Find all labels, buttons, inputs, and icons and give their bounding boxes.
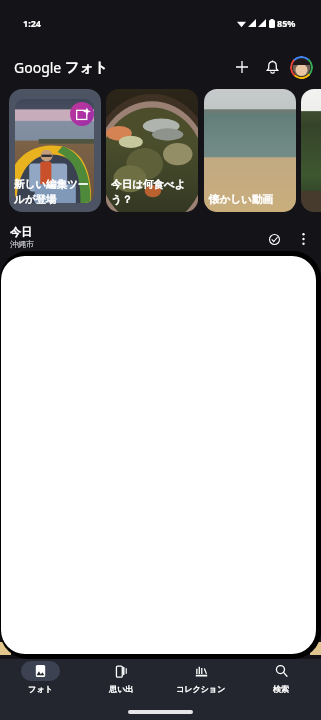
staticText: コレクション bbox=[176, 684, 226, 694]
button[interactable] bbox=[301, 89, 321, 212]
staticText: 思い出 bbox=[109, 684, 134, 694]
button[interactable]: 思い出 bbox=[81, 659, 161, 696]
staticText: 85% bbox=[277, 17, 296, 29]
button[interactable]: フォト bbox=[0, 659, 81, 696]
button[interactable]: Select bbox=[262, 227, 286, 251]
staticText: フォト bbox=[65, 59, 108, 77]
button[interactable]: AI editing bbox=[70, 102, 94, 126]
button[interactable]: Notifications bbox=[258, 53, 286, 81]
button[interactable]: Account bbox=[290, 56, 313, 79]
button[interactable]: AI editing bbox=[9, 89, 101, 212]
button[interactable]: Add bbox=[228, 53, 256, 81]
button[interactable]: 検索 bbox=[241, 659, 321, 696]
button[interactable] bbox=[1, 256, 316, 654]
button[interactable]: コレクション bbox=[161, 659, 241, 696]
staticText: Google bbox=[14, 58, 65, 77]
staticText: 検索 bbox=[273, 684, 289, 694]
staticText: 今日 bbox=[10, 225, 32, 239]
button[interactable]: 今日は何食べよ う？ bbox=[106, 89, 198, 212]
staticText: 今日は何食べよ う？ bbox=[111, 178, 186, 206]
button[interactable]: More options bbox=[291, 227, 315, 251]
staticText: 懐かしい動画 bbox=[209, 193, 273, 206]
staticText: 1:24 bbox=[23, 17, 41, 29]
staticText: フォト bbox=[28, 684, 53, 694]
button[interactable]: 懐かしい動画 bbox=[204, 89, 296, 212]
staticText: 新しい編集ツー ルが登場 bbox=[14, 178, 89, 206]
staticText: 沖縄市 bbox=[10, 239, 34, 249]
